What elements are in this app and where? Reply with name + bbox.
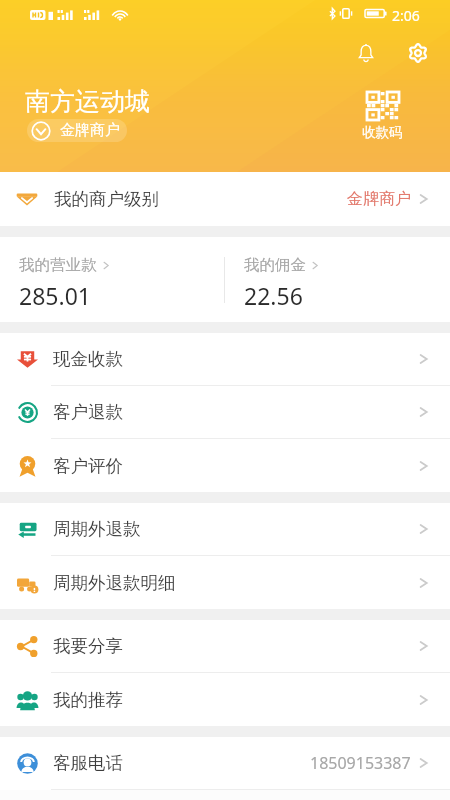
staticText: 南方运动城 xyxy=(25,86,150,117)
staticText: 客户评价 xyxy=(53,455,123,477)
staticText: 客户退款 xyxy=(53,401,123,423)
staticText: 周期外退款 xyxy=(53,518,141,540)
button[interactable]: 现金收款 xyxy=(0,333,450,385)
staticText: 我的推荐 xyxy=(53,689,123,711)
button[interactable]: 客户评价 xyxy=(0,439,450,492)
staticText: 金牌商户 xyxy=(347,189,411,209)
button[interactable]: 收款码 xyxy=(362,92,403,141)
staticText: 收款码 xyxy=(362,124,403,141)
staticText: 2:06 xyxy=(392,6,420,25)
staticText: 我要分享 xyxy=(53,635,123,657)
staticText: 我的营业款 xyxy=(19,255,97,275)
button[interactable]: 我的佣金 xyxy=(225,237,450,322)
button[interactable]: 金牌商户 xyxy=(27,119,127,142)
button[interactable]: Notifications xyxy=(343,30,389,76)
staticText: 18509153387 xyxy=(310,752,411,774)
staticText: 我的佣金 xyxy=(244,255,306,275)
button[interactable]: Settings xyxy=(395,30,441,76)
staticText: 金牌商户 xyxy=(60,121,120,140)
button[interactable]: 我要分享 xyxy=(0,620,450,672)
staticText: 现金收款 xyxy=(53,348,123,370)
staticText: 22.56 xyxy=(244,280,303,311)
button[interactable]: 我的商户级别 xyxy=(0,172,450,226)
staticText: 客服电话 xyxy=(53,752,123,774)
button[interactable]: 周期外退款明细 xyxy=(0,556,450,609)
button[interactable]: 我的营业款 xyxy=(0,237,224,322)
button[interactable]: 客户退款 xyxy=(0,386,450,438)
button[interactable]: 我的推荐 xyxy=(0,673,450,726)
button[interactable]: 客服电话 xyxy=(0,737,450,789)
staticText: 周期外退款明细 xyxy=(53,572,176,594)
staticText: 285.01 xyxy=(19,280,91,311)
staticText: 我的商户级别 xyxy=(54,188,159,210)
button[interactable]: 周期外退款 xyxy=(0,503,450,555)
